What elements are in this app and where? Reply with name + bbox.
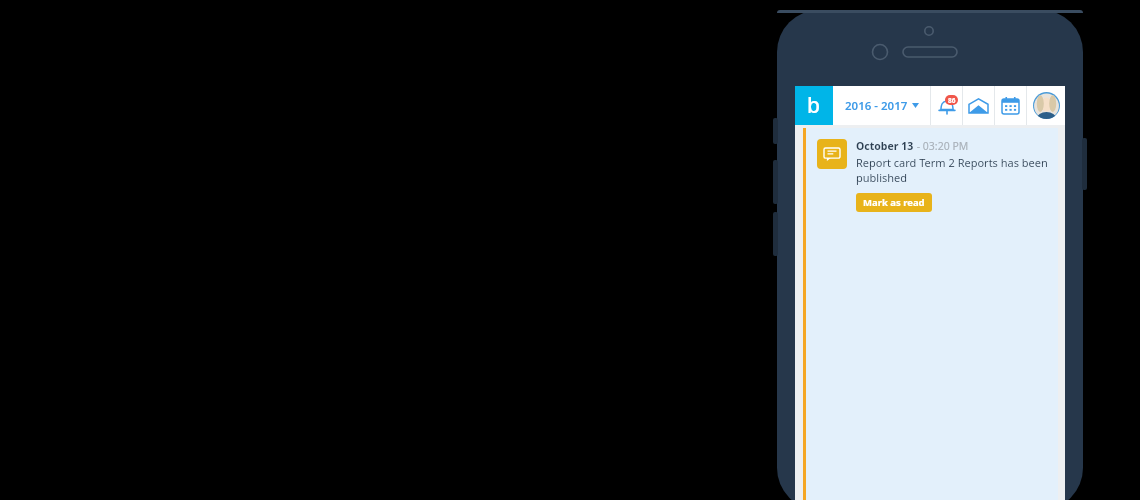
staticText: Report card Term 2 Reports has been publ… — [856, 155, 1048, 185]
button[interactable]: Calendar — [995, 86, 1026, 125]
button[interactable]: Notifications — [931, 86, 962, 125]
button[interactable]: Messages — [963, 86, 994, 125]
staticText: Mark as read — [863, 196, 925, 209]
staticText: October 13 — [856, 139, 914, 153]
staticText: b — [807, 91, 821, 120]
staticText: - 03:20 PM — [914, 139, 969, 153]
button[interactable]: Home — [795, 86, 833, 125]
staticText: 86 — [948, 96, 956, 105]
button[interactable]: October 13 — [803, 128, 1058, 500]
staticText: 2016 - 2017 — [845, 98, 908, 114]
button[interactable]: Profile — [1027, 86, 1065, 125]
button[interactable]: 2016 - 2017 — [833, 86, 930, 125]
button[interactable]: Mark as read — [856, 193, 932, 212]
